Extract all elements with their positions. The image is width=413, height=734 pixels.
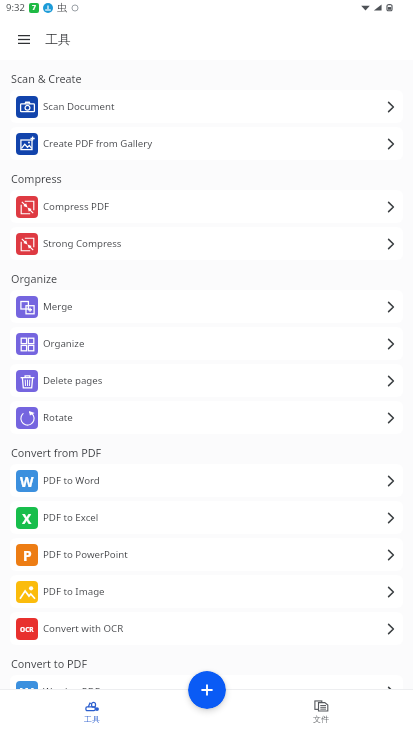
button[interactable]: Rotate [10,401,403,434]
staticText: Rotate [43,411,73,424]
button[interactable]: 工具 [56,697,128,727]
staticText: Convert with OCR [43,622,124,635]
staticText: W [20,472,34,491]
button[interactable]: P [10,538,403,571]
staticText: Scan & Create [11,71,82,86]
staticText: PDF to Excel [43,511,99,524]
staticText: 工具 [84,714,100,724]
staticText: PDF to Word [43,474,100,487]
staticText: 虫 [57,1,67,14]
button[interactable]: Menu [11,26,37,52]
button[interactable]: Delete pages [10,364,403,397]
button[interactable]: Scan Document [10,90,403,123]
staticText: Convert from PDF [11,445,102,460]
staticText: Organize [11,271,58,286]
staticText: OCR [20,625,34,634]
staticText: Delete pages [43,374,103,387]
button[interactable]: Add [188,671,226,709]
button[interactable]: X [10,501,403,534]
button[interactable]: 文件 [285,697,357,727]
staticText: Convert to PDF [11,656,88,671]
staticText: PDF to PowerPoint [43,548,128,561]
staticText: 文件 [313,714,329,724]
staticText: Compress [11,171,62,186]
button[interactable]: Create PDF from Gallery [10,127,403,160]
button[interactable]: Compress PDF [10,190,403,223]
button[interactable]: Strong Compress [10,227,403,260]
staticText: PDF to Image [43,585,105,598]
staticText: 9:32 [6,1,25,14]
staticText: Organize [43,337,85,350]
button[interactable]: Merge [10,290,403,323]
staticText: W [20,683,34,702]
staticText: 工具 [45,31,71,47]
staticText: Scan Document [43,100,115,113]
staticText: Compress PDF [43,200,110,213]
button[interactable]: PDF to Image [10,575,403,608]
staticText: Strong Compress [43,237,122,250]
button[interactable]: OCR [10,612,403,645]
staticText: Merge [43,300,73,313]
staticText: X [22,509,32,528]
button[interactable]: Organize [10,327,403,360]
staticText: Create PDF from Gallery [43,137,153,150]
staticText: 7 [32,3,37,13]
staticText: Word to PDF [43,685,100,698]
button[interactable]: W [10,464,403,497]
staticText: P [23,546,32,565]
button[interactable]: W [10,675,403,708]
